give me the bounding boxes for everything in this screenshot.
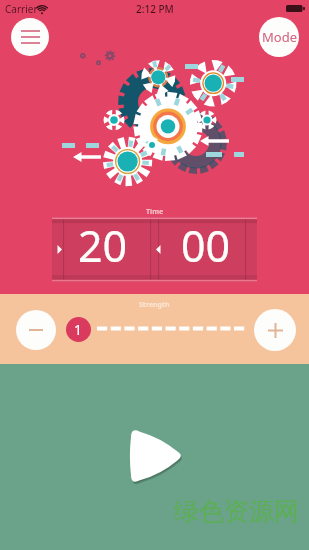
button[interactable]: Increase strength [254, 309, 296, 351]
staticText: Mode [262, 28, 297, 46]
staticText: 20 [78, 216, 128, 275]
staticText: 2:12 PM [136, 2, 174, 16]
button[interactable]: Menu [11, 18, 49, 56]
button[interactable]: Decrease strength [16, 310, 56, 350]
staticText: 1 [74, 320, 83, 339]
staticText: Carrier [5, 2, 38, 16]
button[interactable]: 1 [66, 317, 91, 342]
button[interactable]: Mode [259, 17, 299, 57]
staticText: 00 [181, 216, 231, 275]
staticText: Strength [139, 300, 170, 310]
button[interactable]: Play [128, 424, 189, 488]
staticText: 绿色资源网 [174, 496, 299, 527]
staticText: Time [146, 207, 164, 217]
